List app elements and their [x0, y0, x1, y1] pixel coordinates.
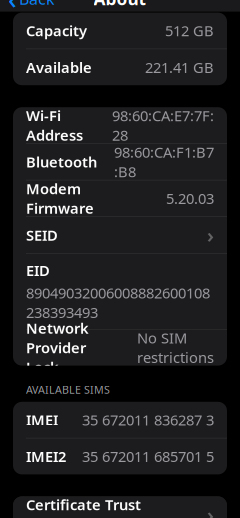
staticText: About: [93, 0, 146, 10]
staticText: 35 672011 836287 3: [82, 410, 214, 430]
staticText: 98:60:CA:E7:7F:28: [112, 106, 214, 145]
button[interactable]: ‹: [0, 0, 55, 20]
staticText: 5.20.03: [166, 189, 214, 208]
staticText: 35 672011 685701 5: [82, 447, 214, 466]
staticText: Back: [19, 0, 55, 9]
staticText: IMEI: [26, 410, 58, 430]
button[interactable]: Certificate Trust Settings: [13, 496, 227, 518]
staticText: Wi-Fi Address: [26, 106, 83, 145]
staticText: 98:60:CA:F1:B7:B8: [114, 142, 214, 181]
staticText: No SIM restrictions: [137, 328, 214, 367]
staticText: 89049032006008882600108238393493: [26, 283, 210, 322]
staticText: AVAILABLE SIMS: [26, 383, 110, 397]
staticText: 221.41 GB: [145, 57, 214, 77]
button[interactable]: SEID: [13, 217, 227, 253]
staticText: ›: [207, 222, 214, 248]
staticText: IMEI2: [26, 447, 66, 466]
staticText: 512 GB: [165, 21, 214, 40]
staticText: Bluetooth: [26, 152, 97, 172]
staticText: Certificate Trust Settings: [26, 495, 141, 518]
staticText: Modem Firmware: [26, 179, 94, 218]
staticText: EID: [26, 261, 50, 280]
staticText: ‹: [8, 0, 17, 16]
staticText: Available: [26, 57, 92, 77]
staticText: ›: [207, 501, 214, 518]
staticText: Network Provider Lock: [26, 318, 89, 377]
staticText: Capacity: [26, 21, 87, 40]
staticText: SEID: [26, 225, 58, 245]
